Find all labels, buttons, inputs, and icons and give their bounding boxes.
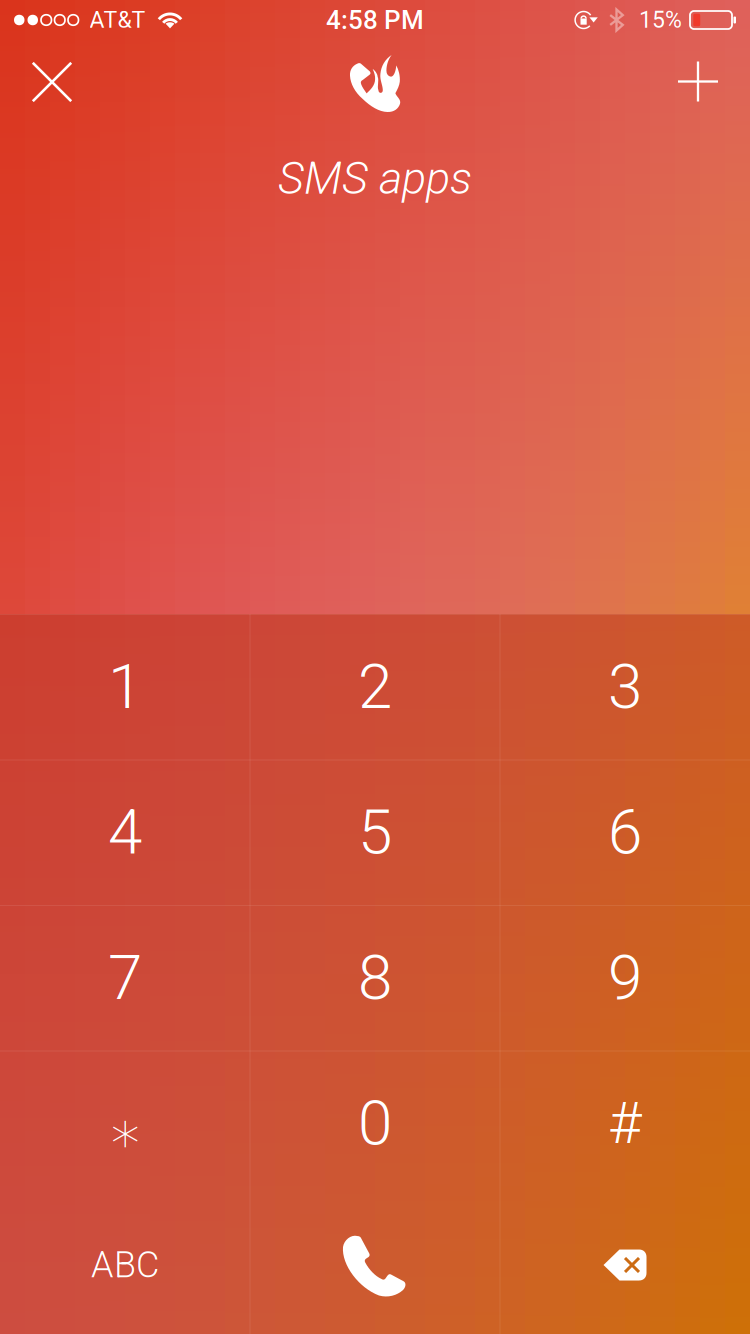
staticText: 6 [608, 796, 642, 869]
button[interactable]: 5 [250, 759, 500, 905]
staticText: 9 [608, 941, 642, 1014]
staticText: 4:58 PM [326, 5, 424, 35]
staticText: 3 [608, 650, 642, 723]
button[interactable]: 3 [500, 614, 750, 759]
staticText: # [608, 1089, 642, 1157]
button[interactable]: Close [0, 40, 104, 104]
staticText: 15% [639, 6, 682, 33]
button[interactable]: 7 [0, 905, 250, 1050]
button[interactable]: 9 [500, 905, 750, 1050]
staticText: SMS apps [278, 152, 472, 205]
staticText: ABC [91, 1244, 159, 1286]
staticText: 5 [358, 796, 392, 869]
staticText: 4 [108, 796, 142, 869]
button[interactable]: 4 [0, 759, 250, 905]
button[interactable]: Delete [500, 1196, 750, 1334]
staticText: 7 [108, 941, 142, 1014]
button[interactable]: 1 [0, 614, 250, 759]
staticText: ∗ [107, 1098, 143, 1166]
button[interactable]: 8 [250, 905, 500, 1050]
button[interactable]: star [0, 1050, 250, 1196]
button[interactable]: ABC keyboard [0, 1196, 250, 1334]
staticText: 0 [358, 1087, 392, 1160]
button[interactable]: Add [646, 40, 750, 104]
button[interactable]: pound [500, 1050, 750, 1196]
button[interactable]: 2 [250, 614, 500, 759]
button[interactable]: Call [250, 1196, 500, 1334]
staticText: 2 [358, 650, 392, 723]
staticText: AT&T [89, 6, 145, 33]
button[interactable]: 6 [500, 759, 750, 905]
button[interactable]: 0 [250, 1050, 500, 1196]
staticText: 8 [358, 941, 392, 1014]
staticText: 1 [108, 650, 142, 723]
